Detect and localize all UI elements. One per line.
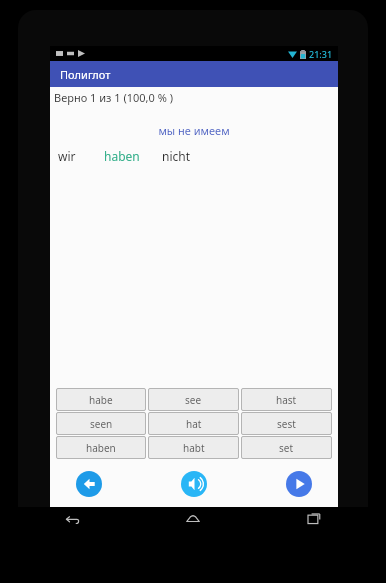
staticText: see — [185, 393, 202, 407]
button[interactable]: Next — [286, 471, 312, 497]
button[interactable]: habt — [148, 436, 239, 459]
button[interactable]: see — [148, 388, 239, 411]
button[interactable]: hast — [241, 388, 332, 411]
button[interactable]: Recent apps — [302, 507, 326, 531]
staticText: sest — [277, 417, 296, 431]
button[interactable]: Back — [60, 507, 84, 531]
button[interactable]: hat — [148, 412, 239, 435]
button[interactable]: Полиглот — [50, 61, 338, 87]
button[interactable]: seen — [56, 412, 146, 435]
staticText: habt — [183, 441, 205, 455]
staticText: hast — [276, 393, 297, 407]
staticText: haben — [104, 148, 140, 164]
button[interactable]: Play sound — [181, 471, 207, 497]
button[interactable]: Back — [76, 471, 102, 497]
staticText: nicht — [162, 148, 191, 164]
staticText: seen — [90, 417, 113, 431]
staticText: 21:31 — [309, 48, 333, 60]
staticText: hat — [186, 417, 202, 431]
staticText: Полиглот — [60, 67, 111, 82]
staticText: haben — [86, 441, 116, 455]
button[interactable]: Home — [181, 507, 205, 531]
staticText: set — [279, 441, 294, 455]
button[interactable]: set — [241, 436, 332, 459]
staticText: wir — [58, 148, 76, 164]
staticText: мы не имеем — [158, 123, 230, 138]
staticText: Верно 1 из 1 (100,0 % ) — [54, 90, 173, 105]
button[interactable]: habe — [56, 388, 146, 411]
button[interactable]: sest — [241, 412, 332, 435]
button[interactable]: haben — [56, 436, 146, 459]
staticText: habe — [89, 393, 113, 407]
